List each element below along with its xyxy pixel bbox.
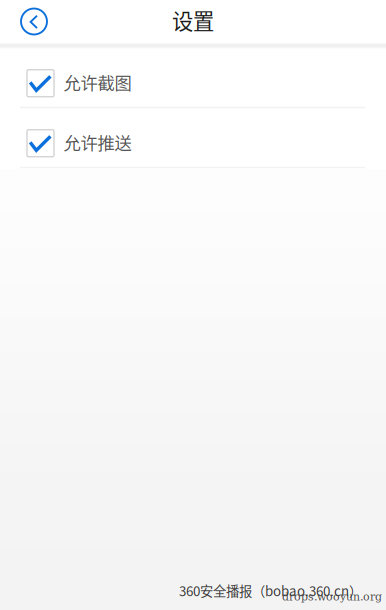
staticText: drops.wooyun.org — [282, 590, 382, 603]
button[interactable]: Back — [12, 0, 56, 43]
staticText: 设置 — [172, 5, 214, 35]
staticText: 允许推送 — [63, 130, 131, 155]
staticText: 允许截图 — [63, 70, 131, 95]
staticText: 360安全播报（bobao.360.cn） — [179, 581, 362, 600]
button[interactable]: 允许推送 — [0, 109, 386, 169]
button[interactable]: 允许截图 — [0, 49, 386, 109]
